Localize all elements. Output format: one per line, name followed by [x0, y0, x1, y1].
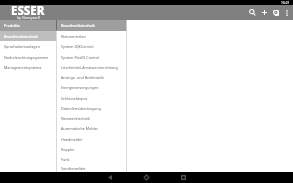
staticText: Anzeige- und Bedienteile: [61, 75, 105, 80]
staticText: Löschmittel-Ansteuereinrichtung: [61, 65, 118, 70]
button[interactable]: Recent apps: [165, 172, 202, 183]
staticText: Automatische Melder: [61, 126, 99, 131]
button[interactable]: Automatische Melder: [57, 123, 126, 134]
button[interactable]: Schlüsseldepot: [57, 93, 126, 103]
button[interactable]: Sprachalarmanlagen: [0, 41, 56, 52]
button[interactable]: Energieversorgungen: [57, 82, 126, 93]
staticText: Produkte: [4, 23, 20, 28]
button[interactable]: Löschmittel-Ansteuereinrichtung: [57, 62, 126, 72]
staticText: Notbeleuchtungssysteme: [4, 55, 49, 60]
staticText: Datenfernübertragung: [61, 106, 101, 111]
staticText: Brandmeldetechnik: [61, 23, 95, 28]
staticText: Brandmeldetechnik: [4, 34, 38, 39]
button[interactable]: Search: [246, 5, 258, 20]
staticText: Schlüsseldepot: [61, 96, 88, 101]
button[interactable]: Camera: [270, 5, 282, 20]
staticText: Koppler: [61, 147, 75, 152]
staticText: Kleinzentralen: [61, 34, 86, 39]
button[interactable]: Sondermelder: [57, 164, 126, 172]
button[interactable]: Add: [258, 5, 270, 20]
button[interactable]: Brandmeldetechnik: [0, 31, 56, 41]
button[interactable]: Home: [128, 172, 165, 183]
staticText: System FlexES Control: [61, 55, 100, 60]
staticText: Funk: [61, 157, 70, 162]
staticText: Sprachalarmanlagen: [4, 44, 40, 49]
button[interactable]: Funk: [57, 154, 126, 164]
staticText: Managementsysteme: [4, 65, 42, 70]
button[interactable]: Handmelder: [57, 134, 126, 144]
staticText: Energieversorgungen: [61, 85, 99, 90]
button[interactable]: Netzwerktechnik: [57, 113, 126, 123]
button[interactable]: Koppler: [57, 144, 126, 154]
button[interactable]: Datenfernübertragung: [57, 103, 126, 113]
button[interactable]: More options: [282, 5, 291, 20]
button[interactable]: Kleinzentralen: [57, 31, 126, 41]
staticText: ESSER: [11, 3, 45, 18]
button[interactable]: System FlexES Control: [57, 52, 126, 62]
staticText: Netzwerktechnik: [61, 116, 91, 121]
staticText: 16:21: [281, 0, 290, 5]
staticText: Handmelder: [61, 137, 83, 142]
button[interactable]: Back: [91, 172, 128, 183]
button[interactable]: System IQ8Control: [57, 41, 126, 52]
button[interactable]: Notbeleuchtungssysteme: [0, 52, 56, 62]
button[interactable]: Anzeige- und Bedienteile: [57, 72, 126, 82]
staticText: by Honeywell: [17, 15, 40, 20]
staticText: System IQ8Control: [61, 44, 94, 49]
staticText: Sondermelder: [61, 166, 86, 171]
button[interactable]: Managementsysteme: [0, 62, 56, 72]
